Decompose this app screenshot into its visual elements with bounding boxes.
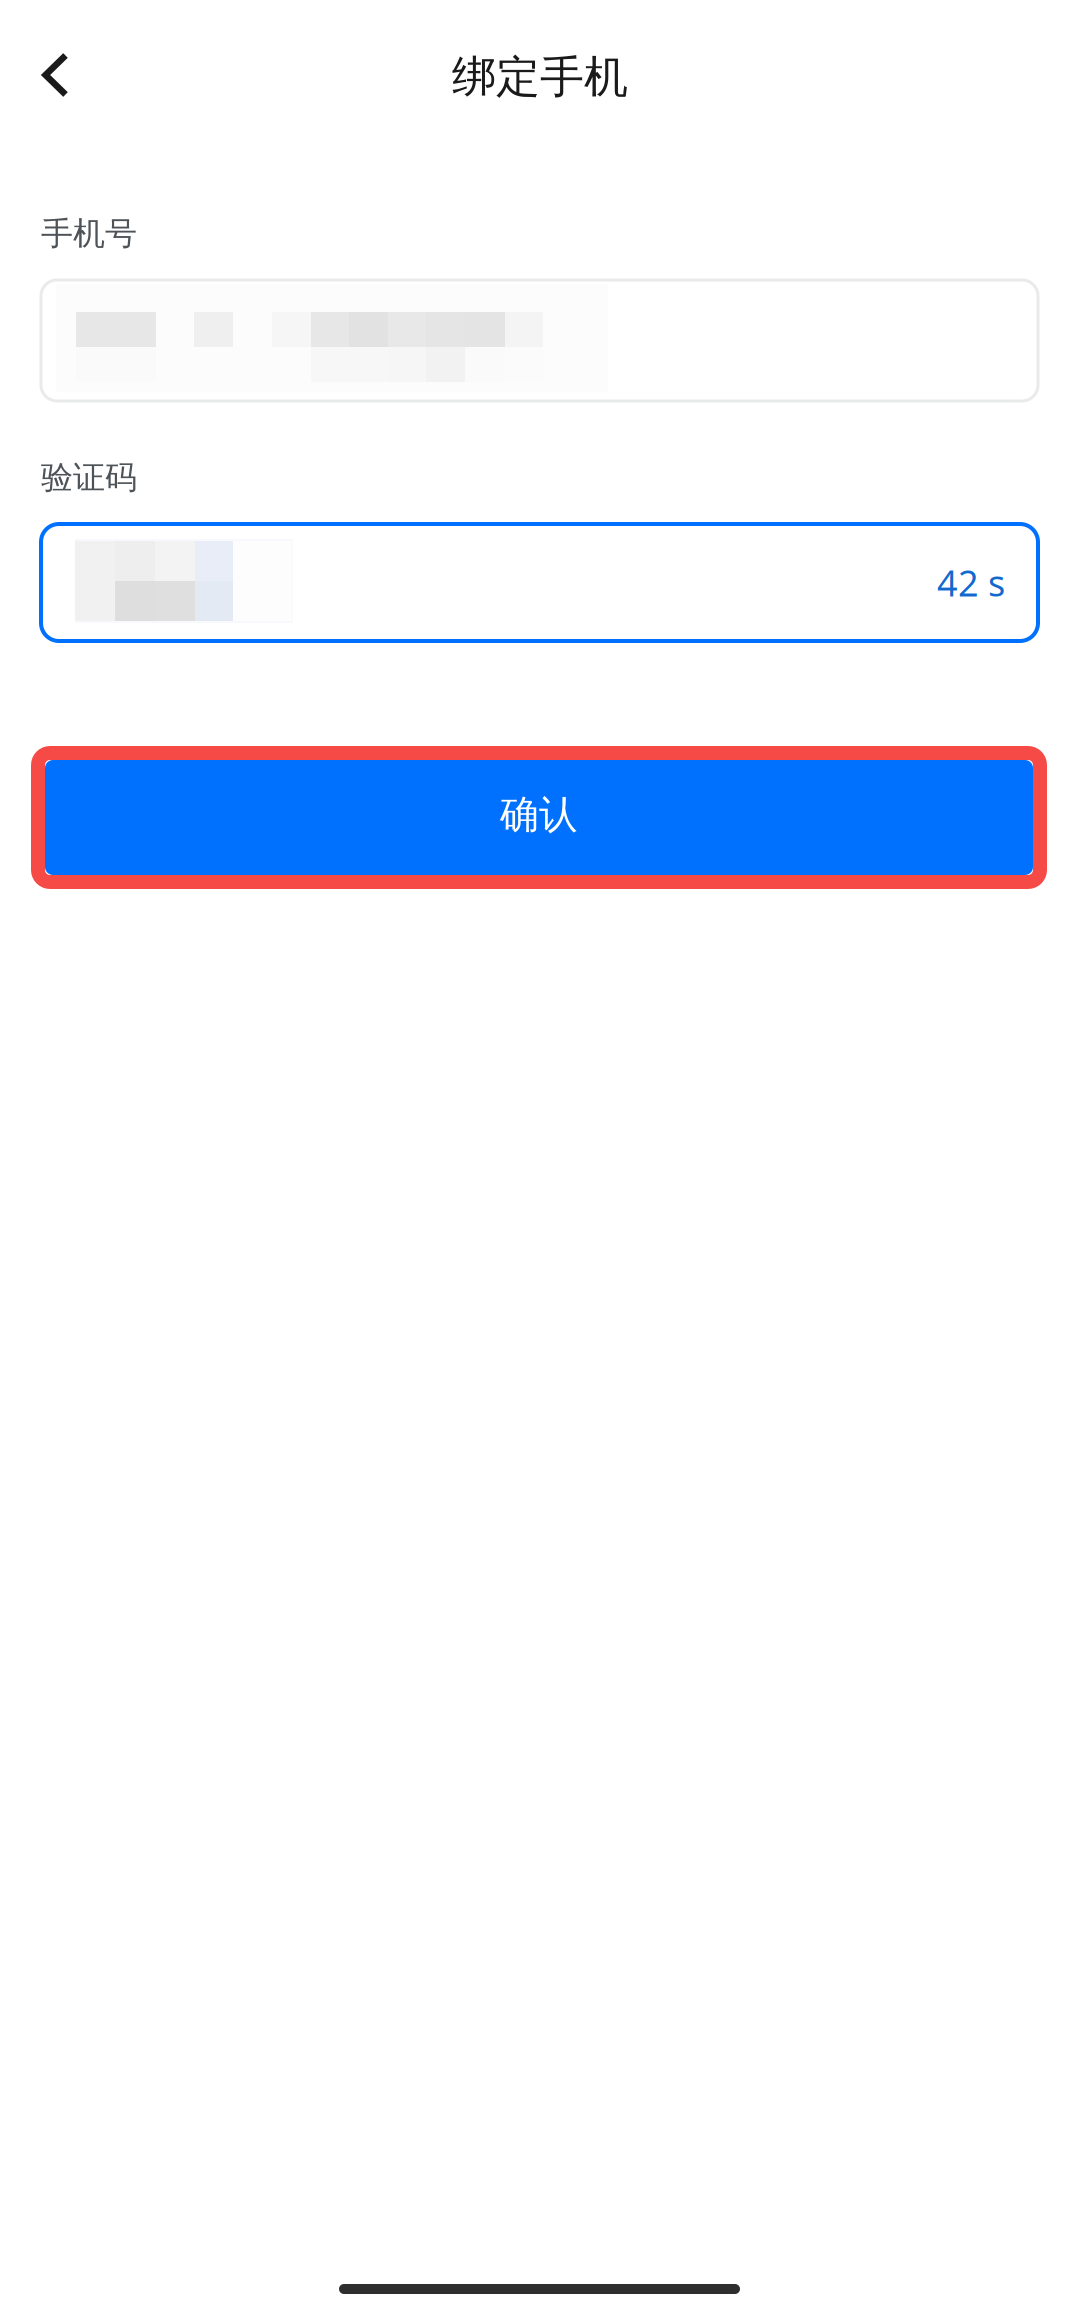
staticText: 手机号 — [41, 214, 137, 253]
button[interactable]: 验证码 — [41, 524, 1038, 641]
staticText: 42 s — [937, 559, 1005, 606]
button[interactable]: 确认 — [38, 753, 1040, 882]
staticText: 验证码 — [41, 458, 137, 497]
staticText: 绑定手机 — [452, 50, 628, 104]
button[interactable]: 手机号 — [41, 280, 1038, 401]
staticText: 确认 — [500, 791, 578, 838]
button[interactable]: Back — [0, 0, 112, 150]
